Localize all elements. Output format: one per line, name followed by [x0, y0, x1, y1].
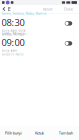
button[interactable]: Tambah: [53, 126, 79, 140]
button[interactable]: Done: [62, 5, 75, 13]
button[interactable]: Alarm off: [63, 39, 73, 47]
staticText: Bunyi alarm, Getar: [1, 29, 25, 32]
button[interactable]: Pilih bunyi: [0, 126, 26, 140]
staticText: E: [8, 5, 11, 13]
staticText: Pilih bunyi: [5, 130, 22, 136]
button[interactable]: Sabtu, Minggu: [0, 33, 79, 53]
staticText: 09:00: [1, 36, 24, 49]
staticText: Tunda 10 menit: [1, 53, 23, 56]
staticText: Tunda 5 menit: [1, 33, 21, 36]
button[interactable]: Ketuk: [26, 126, 53, 140]
staticText: 08:30: [1, 16, 24, 29]
staticText: Done: [64, 6, 73, 12]
staticText: Bunyi alarm: [1, 49, 16, 52]
staticText: Senin, Selasa, Rabu, Kamis: [1, 11, 46, 16]
staticText: Reset: [43, 6, 52, 12]
button[interactable]: Senin, Selasa, Rabu, Kamis: [0, 13, 79, 33]
button[interactable]: Back: [0, 5, 13, 13]
staticText: Ketuk: [35, 130, 44, 136]
button[interactable]: Reset: [41, 5, 54, 13]
staticText: Tambah: [59, 130, 73, 136]
staticText: Sabtu, Minggu: [1, 31, 25, 36]
button[interactable]: Alarm off: [63, 19, 73, 27]
